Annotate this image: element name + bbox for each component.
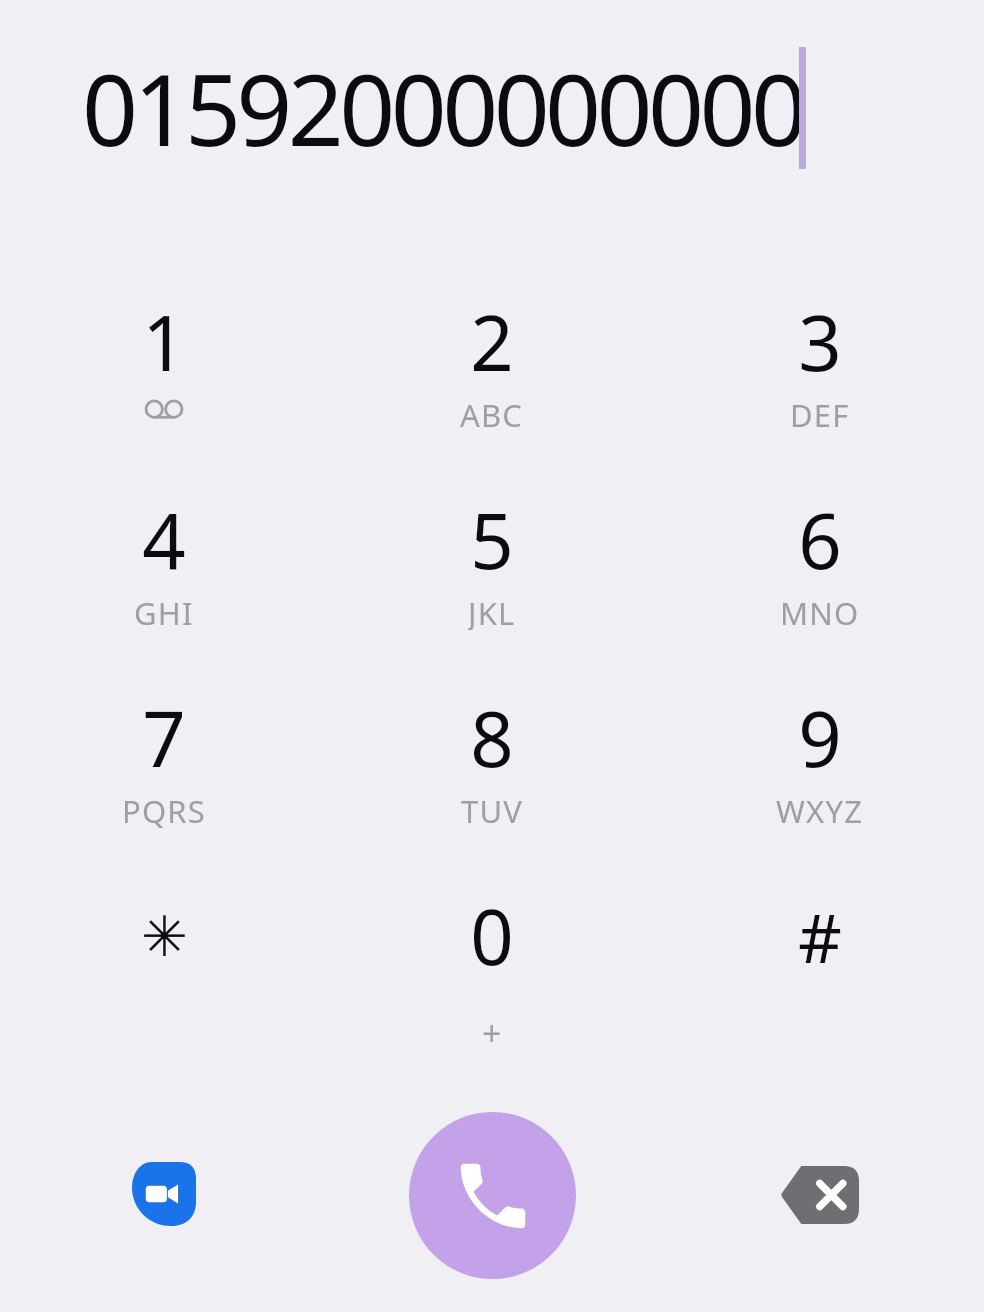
staticText: #	[798, 890, 842, 983]
button[interactable]: 4	[0, 460, 328, 658]
button[interactable]: 6	[656, 460, 984, 658]
staticText: 8	[470, 686, 514, 790]
staticText: 3	[798, 290, 842, 394]
staticText: MNO	[780, 592, 860, 630]
staticText: DEF	[790, 394, 850, 432]
staticText: 6	[798, 488, 842, 592]
button[interactable]: Backspace	[656, 1100, 984, 1290]
staticText: 9	[798, 686, 842, 790]
staticText: 5	[470, 488, 514, 592]
staticText: 2	[470, 290, 514, 394]
button[interactable]: Call	[409, 1112, 576, 1279]
button[interactable]: ✳	[0, 856, 328, 1054]
button[interactable]: 1	[0, 262, 328, 460]
staticText: ✳	[141, 904, 188, 969]
button[interactable]: 2	[328, 262, 656, 460]
staticText: TUV	[461, 790, 524, 828]
button[interactable]: 01592000000000	[82, 41, 803, 174]
staticText: 1	[142, 290, 186, 394]
staticText: 4	[142, 488, 186, 592]
button[interactable]: 9	[656, 658, 984, 856]
staticText: 7	[142, 686, 186, 790]
button[interactable]: 3	[656, 262, 984, 460]
staticText: GHI	[134, 592, 194, 630]
button[interactable]: Video call	[0, 1100, 328, 1290]
staticText: +	[482, 1010, 502, 1048]
staticText: 01592000000000	[82, 41, 803, 174]
button[interactable]: 0	[328, 856, 656, 1054]
button[interactable]: 8	[328, 658, 656, 856]
staticText: ABC	[460, 394, 524, 432]
staticText: WXYZ	[776, 790, 864, 828]
button[interactable]: #	[656, 856, 984, 1054]
staticText: PQRS	[122, 790, 207, 828]
staticText: 0	[470, 884, 514, 988]
button[interactable]: 5	[328, 460, 656, 658]
button[interactable]: 7	[0, 658, 328, 856]
staticText: JKL	[468, 592, 516, 630]
